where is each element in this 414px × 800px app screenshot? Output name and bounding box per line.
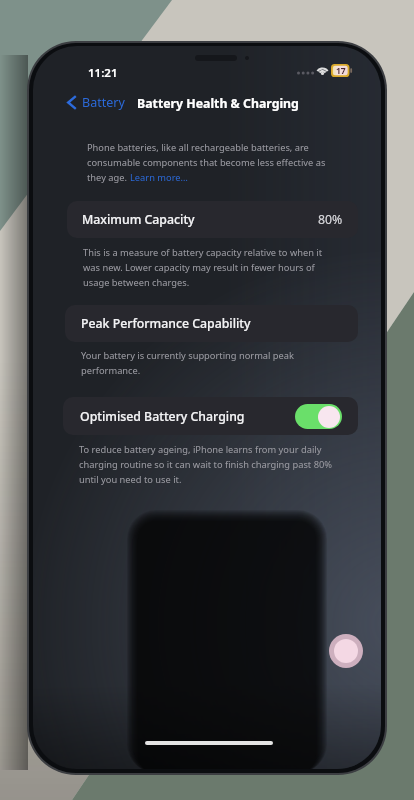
staticText: they age. bbox=[87, 171, 130, 184]
button[interactable]: Learn more… bbox=[130, 171, 188, 184]
button[interactable]: AssistiveTouch bbox=[329, 634, 363, 668]
staticText: Maximum Capacity bbox=[82, 211, 195, 228]
staticText: 80% bbox=[318, 211, 343, 228]
staticText: 17 bbox=[336, 65, 346, 77]
staticText: Peak Performance Capability bbox=[81, 315, 251, 332]
button[interactable]: Peak Performance Capability bbox=[65, 305, 358, 342]
button[interactable]: Maximum Capacity bbox=[67, 201, 358, 238]
staticText: consumable components that become less e… bbox=[87, 156, 326, 169]
staticText: was new. Lower capacity may result in fe… bbox=[83, 261, 315, 274]
button[interactable]: Battery bbox=[67, 94, 125, 111]
staticText: To reduce battery ageing, iPhone learns … bbox=[79, 443, 322, 456]
staticText: Battery bbox=[82, 94, 125, 111]
staticText: usage between charges. bbox=[83, 276, 190, 289]
staticText: performance. bbox=[81, 364, 141, 377]
staticText: Your battery is currently supporting nor… bbox=[81, 349, 294, 362]
button[interactable]: Optimised Battery Charging bbox=[295, 404, 342, 429]
button[interactable]: Optimised Battery Charging bbox=[63, 397, 358, 435]
staticText: 11:21 bbox=[88, 65, 118, 81]
staticText: Phone batteries, like all rechargeable b… bbox=[87, 141, 309, 154]
staticText: until you need to use it. bbox=[79, 473, 182, 486]
staticText: This is a measure of battery capacity re… bbox=[83, 246, 323, 259]
staticText: Battery Health & Charging bbox=[137, 95, 299, 112]
staticText: Optimised Battery Charging bbox=[80, 408, 245, 425]
staticText: charging routine so it can wait to finis… bbox=[79, 458, 332, 471]
